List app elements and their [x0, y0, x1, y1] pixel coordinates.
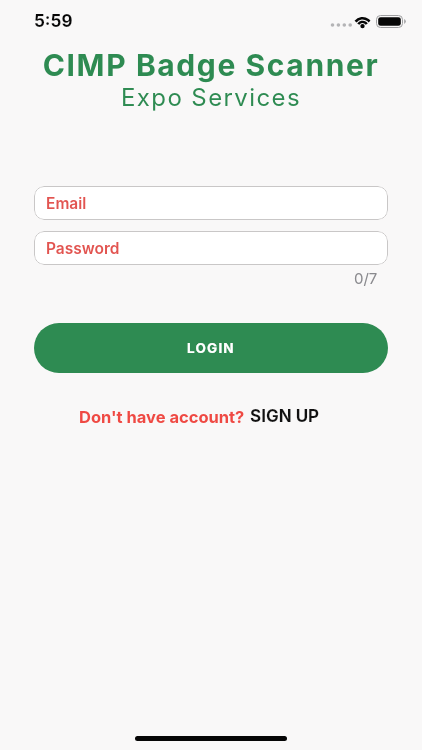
button[interactable]: Password	[34, 231, 388, 265]
button[interactable]: Don't have account?	[0, 406, 410, 427]
button[interactable]: Email	[34, 186, 388, 220]
staticText: 0/7	[354, 269, 378, 287]
staticText: 5:59	[34, 11, 73, 32]
staticText: SIGN UP	[250, 406, 320, 427]
staticText: LOGIN	[187, 340, 235, 356]
staticText: Don't have account?	[79, 407, 245, 427]
staticText: CIMP Badge Scanner	[0, 47, 422, 83]
staticText: Password	[46, 239, 120, 258]
button[interactable]: LOGIN	[34, 323, 388, 373]
staticText: Email	[46, 194, 87, 213]
staticText: Expo Services	[0, 83, 422, 112]
